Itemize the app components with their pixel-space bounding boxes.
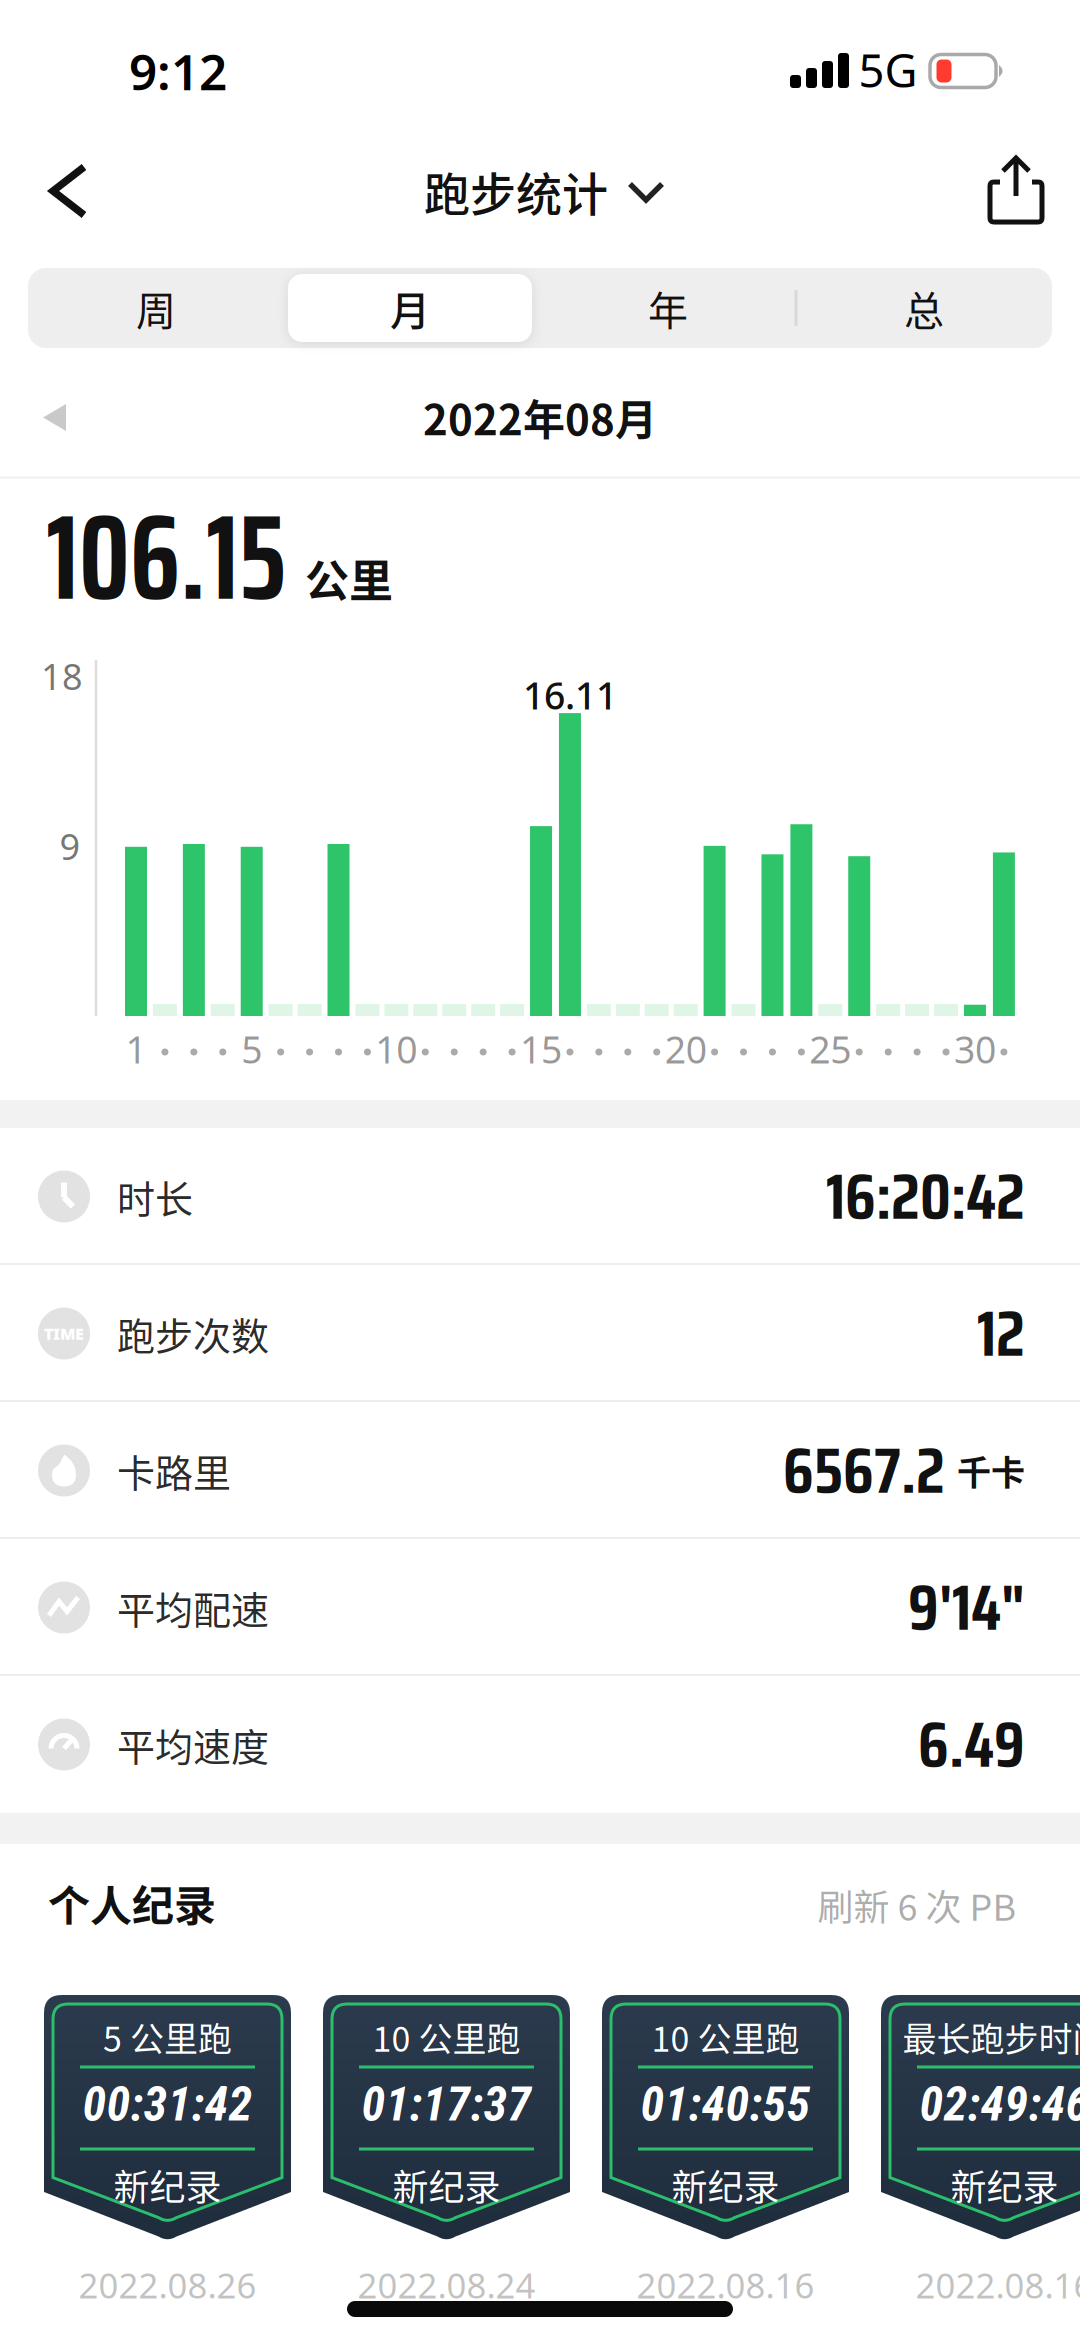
staticText: 时长 xyxy=(117,1169,193,1224)
staticText: 2022.08.26 xyxy=(78,2262,256,2308)
staticText: 10 公里跑 xyxy=(651,2012,799,2062)
staticText: 5G xyxy=(858,40,917,100)
staticText: 最长跑步时间 xyxy=(902,2012,1080,2062)
staticText: 公里 xyxy=(305,546,393,610)
staticText: 新纪录 xyxy=(113,2159,221,2211)
staticText: 9:12 xyxy=(129,38,227,104)
button[interactable]: 月 xyxy=(288,274,532,342)
button[interactable] xyxy=(0,370,110,465)
staticText: 新纪录 xyxy=(392,2159,500,2211)
staticText: 16.11 xyxy=(523,670,617,720)
staticText: 跑步统计 xyxy=(424,158,608,224)
staticText: 新纪录 xyxy=(671,2159,779,2211)
button[interactable]: 10 公里跑 xyxy=(602,1995,849,2240)
staticText: 刷新 6 次 PB xyxy=(817,1879,1016,1931)
staticText: 01:40:55 xyxy=(640,2076,810,2132)
staticText: 9 xyxy=(59,822,80,870)
button[interactable]: 10 公里跑 xyxy=(323,1995,570,2240)
staticText: 5 xyxy=(241,1024,262,1074)
staticText: 平均速度 xyxy=(117,1717,269,1772)
staticText: 12 xyxy=(977,1283,1025,1384)
staticText: 9'14" xyxy=(908,1557,1025,1658)
staticText: 5 公里跑 xyxy=(103,2012,232,2062)
staticText: 15 xyxy=(520,1024,562,1074)
staticText: 周 xyxy=(136,279,176,337)
button[interactable]: 跑步统计 xyxy=(0,130,1080,245)
staticText: 16:20:42 xyxy=(826,1146,1025,1247)
staticText: 新纪录 xyxy=(950,2159,1058,2211)
staticText: 年 xyxy=(648,279,688,337)
staticText: 6567.2 xyxy=(783,1420,945,1521)
button[interactable] xyxy=(0,130,1080,245)
staticText: 00:31:42 xyxy=(82,2076,252,2132)
staticText: 2022.08.16 xyxy=(915,2262,1080,2308)
staticText: 卡路里 xyxy=(117,1443,231,1498)
staticText: 总 xyxy=(904,279,944,337)
button[interactable]: 年 xyxy=(543,268,793,348)
button[interactable]: 最长跑步时间 xyxy=(881,1995,1080,2240)
staticText: 跑步次数 xyxy=(117,1306,269,1361)
staticText: 25 xyxy=(809,1024,851,1074)
button[interactable] xyxy=(0,130,130,245)
staticText: 1 xyxy=(125,1024,146,1074)
staticText: 6.49 xyxy=(918,1694,1025,1795)
staticText: 2022.08.24 xyxy=(357,2262,535,2308)
staticText: 个人纪录 xyxy=(48,1873,216,1933)
staticText: 月 xyxy=(390,279,430,337)
staticText: 平均配速 xyxy=(117,1580,269,1635)
staticText: 10 xyxy=(375,1024,417,1074)
staticText: 106.15 xyxy=(46,463,286,651)
button[interactable]: 周 xyxy=(31,268,281,348)
staticText: TIME xyxy=(44,1323,84,1344)
staticText: 20 xyxy=(665,1024,707,1074)
staticText: 10 公里跑 xyxy=(372,2012,520,2062)
button[interactable]: 5 公里跑 xyxy=(44,1995,291,2240)
staticText: 01:17:37 xyxy=(361,2076,531,2132)
staticText: 18 xyxy=(41,652,83,700)
staticText: 02:49:46 xyxy=(919,2076,1080,2132)
staticText: 千卡 xyxy=(957,1446,1025,1495)
button[interactable]: 总 xyxy=(799,268,1049,348)
staticText: 2022年08月 xyxy=(423,387,657,447)
staticText: 30 xyxy=(954,1024,996,1074)
staticText: 2022.08.16 xyxy=(636,2262,814,2308)
